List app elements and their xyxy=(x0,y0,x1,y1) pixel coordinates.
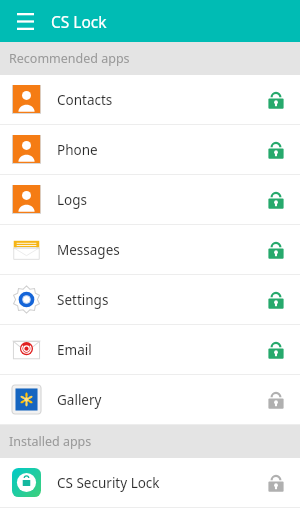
button[interactable]: Contacts xyxy=(0,75,300,125)
staticText: Installed apps xyxy=(9,433,92,450)
button[interactable]: Open navigation menu xyxy=(9,5,41,37)
staticText: Email xyxy=(57,341,266,359)
staticText: CS Lock xyxy=(51,11,107,32)
button[interactable]: Gallery xyxy=(0,375,300,425)
button[interactable]: Phone xyxy=(0,125,300,175)
button[interactable]: Settings xyxy=(0,275,300,325)
staticText: Logs xyxy=(57,191,266,209)
staticText: Contacts xyxy=(57,91,266,109)
staticText: Phone xyxy=(57,141,266,159)
staticText: Messages xyxy=(57,241,266,259)
button[interactable]: Logs xyxy=(0,175,300,225)
button[interactable]: Email xyxy=(0,325,300,375)
staticText: Recommended apps xyxy=(9,50,130,67)
button[interactable]: Messages xyxy=(0,225,300,275)
button[interactable]: CS Security Lock xyxy=(0,458,300,508)
staticText: Gallery xyxy=(57,391,266,409)
staticText: CS Security Lock xyxy=(57,474,266,492)
staticText: Settings xyxy=(57,291,266,309)
